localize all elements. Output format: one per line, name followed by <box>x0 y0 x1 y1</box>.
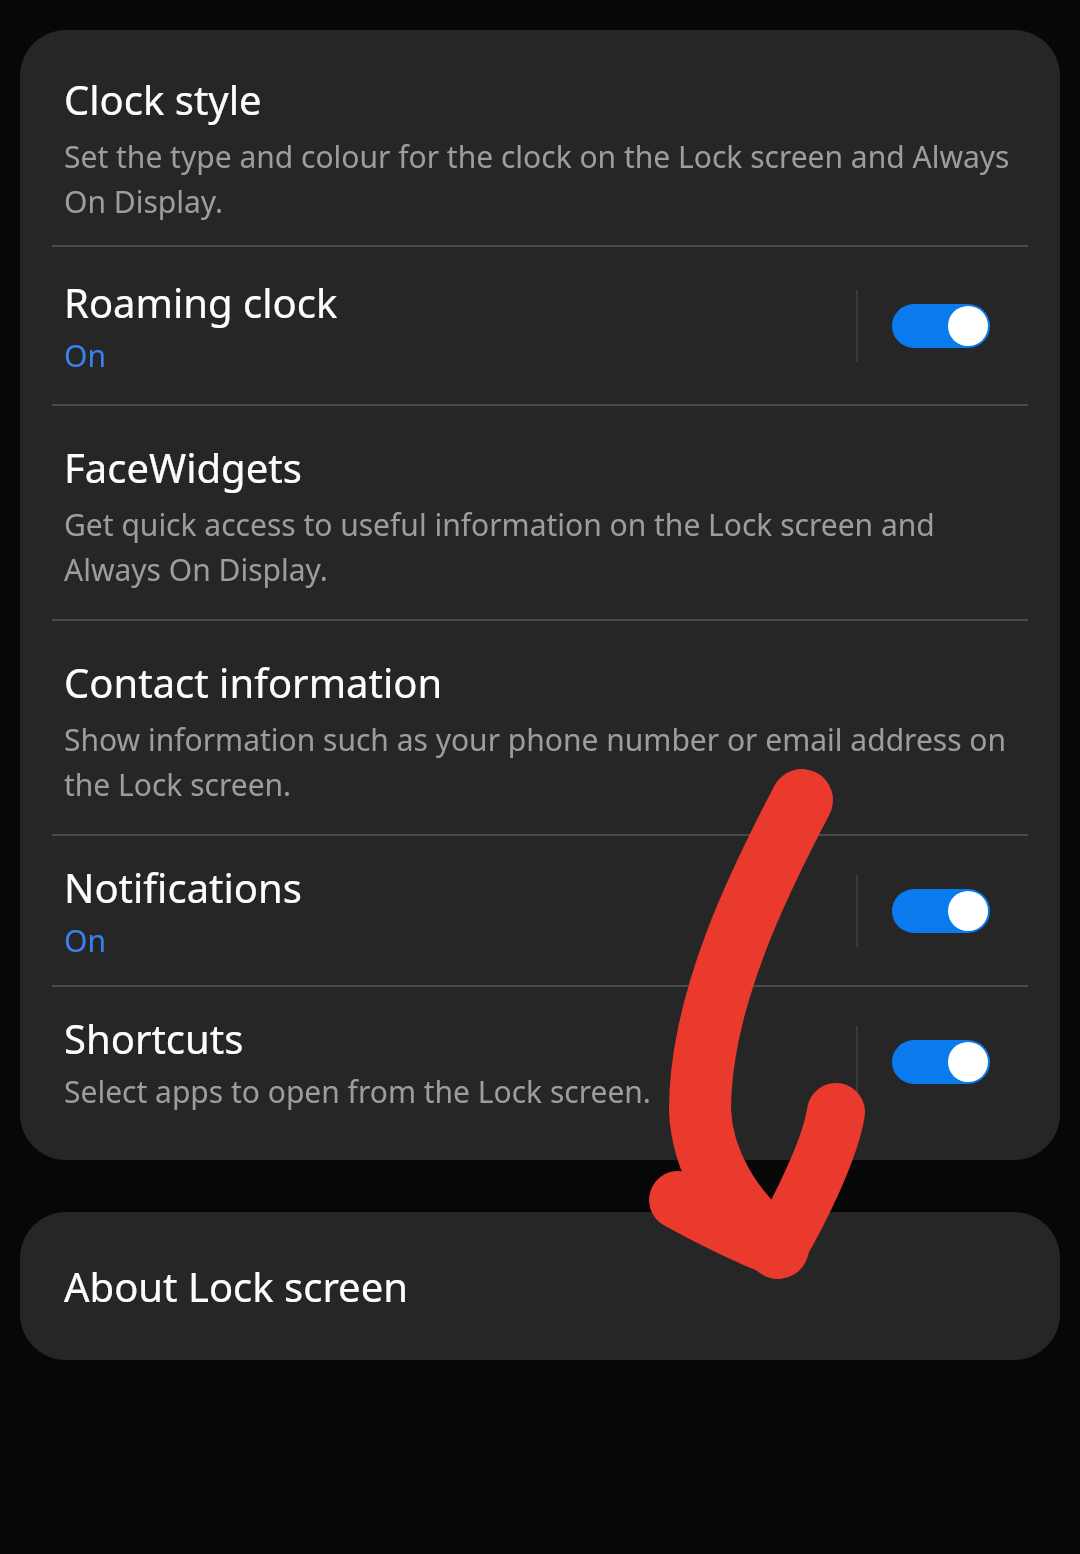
button[interactable]: Clock style <box>20 30 1060 245</box>
button[interactable]: About Lock screen <box>20 1212 1060 1360</box>
staticText: Select apps to open from the Lock screen… <box>64 1071 651 1112</box>
staticText: Roaming clock <box>64 275 338 329</box>
staticText: Contact information <box>64 655 443 709</box>
button[interactable]: Toggle on <box>892 1040 990 1084</box>
staticText: Clock style <box>64 72 262 126</box>
staticText: Notifications <box>64 860 302 914</box>
staticText: On <box>64 335 106 376</box>
staticText: On <box>64 920 106 961</box>
button[interactable]: Shortcuts <box>20 987 1060 1136</box>
button[interactable]: Toggle on <box>892 304 990 348</box>
button[interactable]: FaceWidgets <box>20 406 1060 619</box>
staticText: About Lock screen <box>64 1259 408 1313</box>
button[interactable]: Notifications <box>20 836 1060 985</box>
staticText: Get quick access to useful information o… <box>64 504 1016 589</box>
button[interactable]: Roaming clock <box>20 247 1060 404</box>
button[interactable]: Contact information <box>20 621 1060 834</box>
button[interactable]: Toggle on <box>892 889 990 933</box>
staticText: Show information such as your phone numb… <box>64 719 1016 804</box>
staticText: FaceWidgets <box>64 440 302 494</box>
staticText: Set the type and colour for the clock on… <box>64 136 1016 221</box>
staticText: Shortcuts <box>64 1011 244 1065</box>
